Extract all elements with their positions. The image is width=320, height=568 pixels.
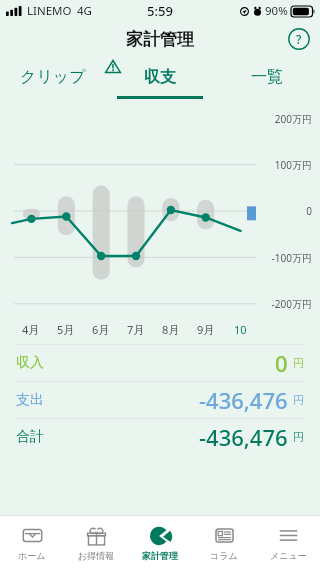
staticText: 支出 [16,391,44,409]
staticText: ? [296,31,302,47]
staticText: メニュー [270,550,307,561]
staticText: 円 [293,356,304,370]
staticText: LINEMO [27,3,72,19]
button[interactable]: Alert [104,58,122,76]
staticText: 5:59 [147,2,173,20]
button[interactable]: コラム [192,516,256,568]
staticText: 家計管理 [142,550,178,561]
staticText: 10 [234,322,247,337]
staticText: 円 [293,393,304,407]
staticText: 5月 [57,322,75,337]
button[interactable]: 支出 [16,382,304,418]
staticText: 家計管理 [126,29,194,50]
button[interactable]: クリップ [0,56,106,106]
staticText: 4G [77,3,92,19]
staticText: 8月 [162,322,180,337]
button[interactable]: 一覧 [213,56,320,106]
staticText: -436,476 [199,422,288,452]
button[interactable]: メニュー [256,516,320,568]
staticText: 90% [265,3,288,19]
staticText: コラム [210,550,238,561]
button[interactable]: 収支 [106,56,213,106]
staticText: 収支 [144,67,176,87]
staticText: 収入 [16,354,44,372]
staticText: 100万円 [258,158,312,172]
staticText: 200万円 [258,112,312,126]
staticText: 9月 [197,322,215,337]
staticText: -100万円 [258,251,312,265]
staticText: 合計 [16,428,44,446]
staticText: 6月 [92,322,110,337]
button[interactable]: 合計 [16,419,304,455]
staticText: 4月 [22,322,40,337]
staticText: 7月 [127,322,145,337]
button[interactable]: お得情報 [64,516,128,568]
staticText: -436,476 [199,385,288,415]
staticText: お得情報 [78,550,115,561]
staticText: 円 [293,430,304,444]
button[interactable]: 家計管理 [128,516,192,568]
staticText: ホーム [18,550,46,561]
button[interactable]: Help [288,28,310,50]
staticText: 0 [275,348,288,378]
button[interactable]: 収入 [16,345,304,381]
staticText: 一覧 [251,67,283,87]
staticText: クリップ [20,67,86,87]
button[interactable]: ホーム [0,516,64,568]
staticText: 0 [258,204,312,218]
staticText: -200万円 [258,297,312,311]
